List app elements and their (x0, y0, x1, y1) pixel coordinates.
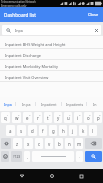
button[interactable]: m (75, 138, 83, 149)
staticText: i (77, 115, 79, 121)
staticText: Inpa (15, 28, 23, 33)
staticText: 3 (29, 113, 31, 116)
staticText: 8 (79, 113, 81, 116)
button[interactable]: Inpa (0, 97, 16, 111)
button[interactable]: Inpatient Discharge (0, 49, 103, 60)
staticText: m (77, 141, 82, 147)
button[interactable]: s (17, 125, 26, 136)
button[interactable]: Close (84, 7, 103, 22)
button[interactable]: y (54, 112, 62, 123)
button[interactable]: v (45, 138, 53, 149)
button[interactable]: Inpatient Visit Overview (0, 71, 103, 82)
staticText: 0 (99, 113, 101, 116)
staticText: u (67, 115, 70, 121)
button[interactable]: g (49, 125, 57, 136)
staticText: . (79, 154, 80, 159)
button[interactable]: d (28, 125, 37, 136)
staticText: w (15, 115, 19, 121)
staticText: t (47, 115, 49, 121)
button[interactable]: Inpatient Morbidity Mortality (0, 60, 103, 71)
staticText: Inpatient (41, 102, 57, 107)
button[interactable]: q (1, 112, 10, 123)
staticText: In pa (22, 102, 31, 107)
staticText: c (38, 141, 41, 147)
button[interactable]: Clear search (91, 25, 101, 35)
staticText: p (97, 115, 100, 121)
staticText: v (48, 141, 51, 147)
button[interactable]: w (12, 112, 21, 123)
staticText: 7 (69, 113, 71, 116)
button[interactable]: t (44, 112, 52, 123)
button[interactable]: backspace (85, 138, 102, 149)
button[interactable]: e (23, 112, 32, 123)
button[interactable]: Recents (74, 169, 88, 183)
button[interactable]: . (76, 151, 83, 162)
staticText: 9 (89, 113, 91, 116)
staticText: 2 (18, 113, 20, 116)
staticText: 5 (49, 113, 51, 116)
staticText: 6 (59, 113, 61, 116)
staticText: y (57, 115, 60, 121)
staticText: n (68, 141, 71, 147)
button[interactable]: k (79, 125, 87, 136)
button[interactable]: Space (32, 151, 74, 162)
button[interactable]: search (85, 151, 102, 162)
staticText: x (27, 141, 30, 147)
button[interactable]: u (64, 112, 72, 123)
button[interactable]: shift (1, 138, 11, 149)
staticText: 1 (7, 113, 9, 116)
button[interactable]: Inpatients (62, 97, 87, 111)
staticText: Inpa (4, 102, 12, 107)
button[interactable]: j (69, 125, 77, 136)
button[interactable]: Back (15, 169, 29, 183)
staticText: q (4, 115, 7, 121)
staticText: r (37, 115, 39, 121)
button[interactable]: r (34, 112, 42, 123)
button[interactable]: , (24, 151, 30, 162)
staticText: Dashboard list (4, 12, 36, 18)
staticText: Inpatient Visit Overview (5, 75, 49, 80)
button[interactable]: In (87, 97, 103, 111)
staticText: g (52, 128, 55, 134)
button[interactable]: ?123 (11, 151, 22, 162)
staticText: 4 (39, 113, 41, 116)
staticText: Inpatients (66, 102, 84, 107)
button[interactable]: l (89, 125, 97, 136)
staticText: e (26, 115, 29, 121)
button[interactable]: p (94, 112, 102, 123)
staticText: ?123 (13, 154, 21, 159)
staticText: Inpatient Discharge (5, 53, 42, 58)
staticText: s (20, 128, 23, 134)
staticText: d (31, 128, 34, 134)
staticText: j (72, 128, 74, 134)
button[interactable]: i (74, 112, 82, 123)
staticText: Close (88, 12, 99, 17)
staticText: b (58, 141, 61, 147)
button[interactable]: n (65, 138, 73, 149)
button[interactable]: Inpatient (36, 97, 62, 111)
button[interactable]: a (6, 125, 15, 136)
button[interactable]: b (55, 138, 63, 149)
staticText: k (82, 128, 85, 134)
button[interactable]: c (35, 138, 43, 149)
staticText: z (16, 141, 19, 147)
button[interactable]: o (84, 112, 92, 123)
button[interactable]: Home (45, 169, 59, 183)
staticText: l (92, 128, 94, 134)
button[interactable]: h (59, 125, 67, 136)
staticText: Telecommunication Network (1, 0, 36, 4)
staticText: f (42, 128, 44, 134)
staticText: Inpatient BHS Weight and Height (5, 42, 66, 47)
button[interactable]: In pa (16, 97, 36, 111)
staticText: Emergency calls only (1, 4, 27, 7)
staticText: Inpatient Morbidity Mortality (5, 64, 58, 69)
staticText: a (9, 128, 12, 134)
button[interactable]: Inpatient BHS Weight and Height (0, 38, 103, 49)
staticText: In (93, 102, 97, 107)
button[interactable]: emoji (1, 151, 9, 162)
button[interactable]: f (39, 125, 47, 136)
staticText: o (87, 115, 90, 121)
button[interactable]: Inpa (2, 25, 101, 35)
button[interactable]: x (24, 138, 33, 149)
button[interactable]: z (13, 138, 22, 149)
